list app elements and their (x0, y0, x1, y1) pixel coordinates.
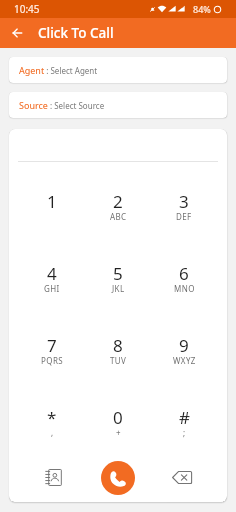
button[interactable]: 1 (19, 171, 85, 242)
staticText: 10:45 (14, 2, 40, 16)
staticText: , (51, 427, 54, 438)
staticText: TUV (110, 355, 127, 366)
staticText: WXYZ (173, 355, 196, 366)
staticText: DEF (176, 211, 192, 222)
button[interactable]: Source : Select Source (9, 92, 227, 118)
button[interactable]: 0 (85, 386, 151, 458)
staticText: + (116, 427, 121, 438)
staticText: 2 (113, 190, 123, 213)
staticText: 0 (113, 406, 123, 429)
staticText: PQRS (41, 355, 64, 366)
button[interactable]: 2 (85, 171, 151, 242)
button[interactable]: Backspace (151, 458, 217, 497)
staticText: * (47, 406, 57, 429)
button[interactable]: # (151, 386, 217, 458)
staticText: # (179, 406, 190, 429)
staticText: 1 (47, 190, 57, 213)
staticText: 84% (193, 3, 211, 15)
staticText: 6 (179, 262, 189, 285)
button[interactable]: 3 (151, 171, 217, 242)
staticText: Source : Select Source (19, 99, 105, 111)
staticText: MNO (174, 283, 195, 294)
button[interactable]: Agent : Select Agent (9, 57, 227, 83)
staticText: 8 (113, 334, 123, 357)
button[interactable]: 8 (85, 314, 151, 386)
staticText: Agent : Select Agent (19, 64, 98, 76)
button[interactable]: Contacts (19, 458, 85, 497)
button[interactable]: Back (7, 23, 27, 43)
staticText: 3 (179, 190, 189, 213)
button[interactable]: Call (101, 461, 135, 495)
staticText: JKL (112, 283, 125, 294)
button[interactable]: 9 (151, 314, 217, 386)
staticText: GHI (44, 283, 60, 294)
staticText: ; (183, 427, 186, 438)
button[interactable]: * (19, 386, 85, 458)
button[interactable]: 4 (19, 242, 85, 314)
staticText: 4 (47, 262, 57, 285)
staticText: 7 (47, 334, 57, 357)
staticText: Click To Call (38, 24, 114, 42)
button[interactable]: 6 (151, 242, 217, 314)
staticText: 9 (179, 334, 189, 357)
staticText: 5 (113, 262, 123, 285)
button[interactable]: 5 (85, 242, 151, 314)
staticText: ABC (110, 211, 127, 222)
button[interactable]: 7 (19, 314, 85, 386)
